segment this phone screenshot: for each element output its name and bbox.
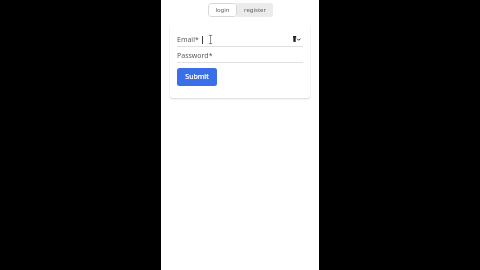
staticText: Submit xyxy=(185,72,209,82)
staticText: Password* xyxy=(177,51,213,61)
staticText: login xyxy=(215,6,230,14)
button[interactable]: Email* xyxy=(177,32,303,47)
button[interactable]: Autofill suggestions xyxy=(291,34,303,45)
staticText: register xyxy=(244,6,266,14)
staticText: Email* xyxy=(177,35,199,45)
button[interactable]: Submit xyxy=(177,68,217,86)
button[interactable]: login xyxy=(208,3,237,17)
button[interactable]: register xyxy=(237,3,273,17)
button[interactable]: Password* xyxy=(177,49,303,63)
